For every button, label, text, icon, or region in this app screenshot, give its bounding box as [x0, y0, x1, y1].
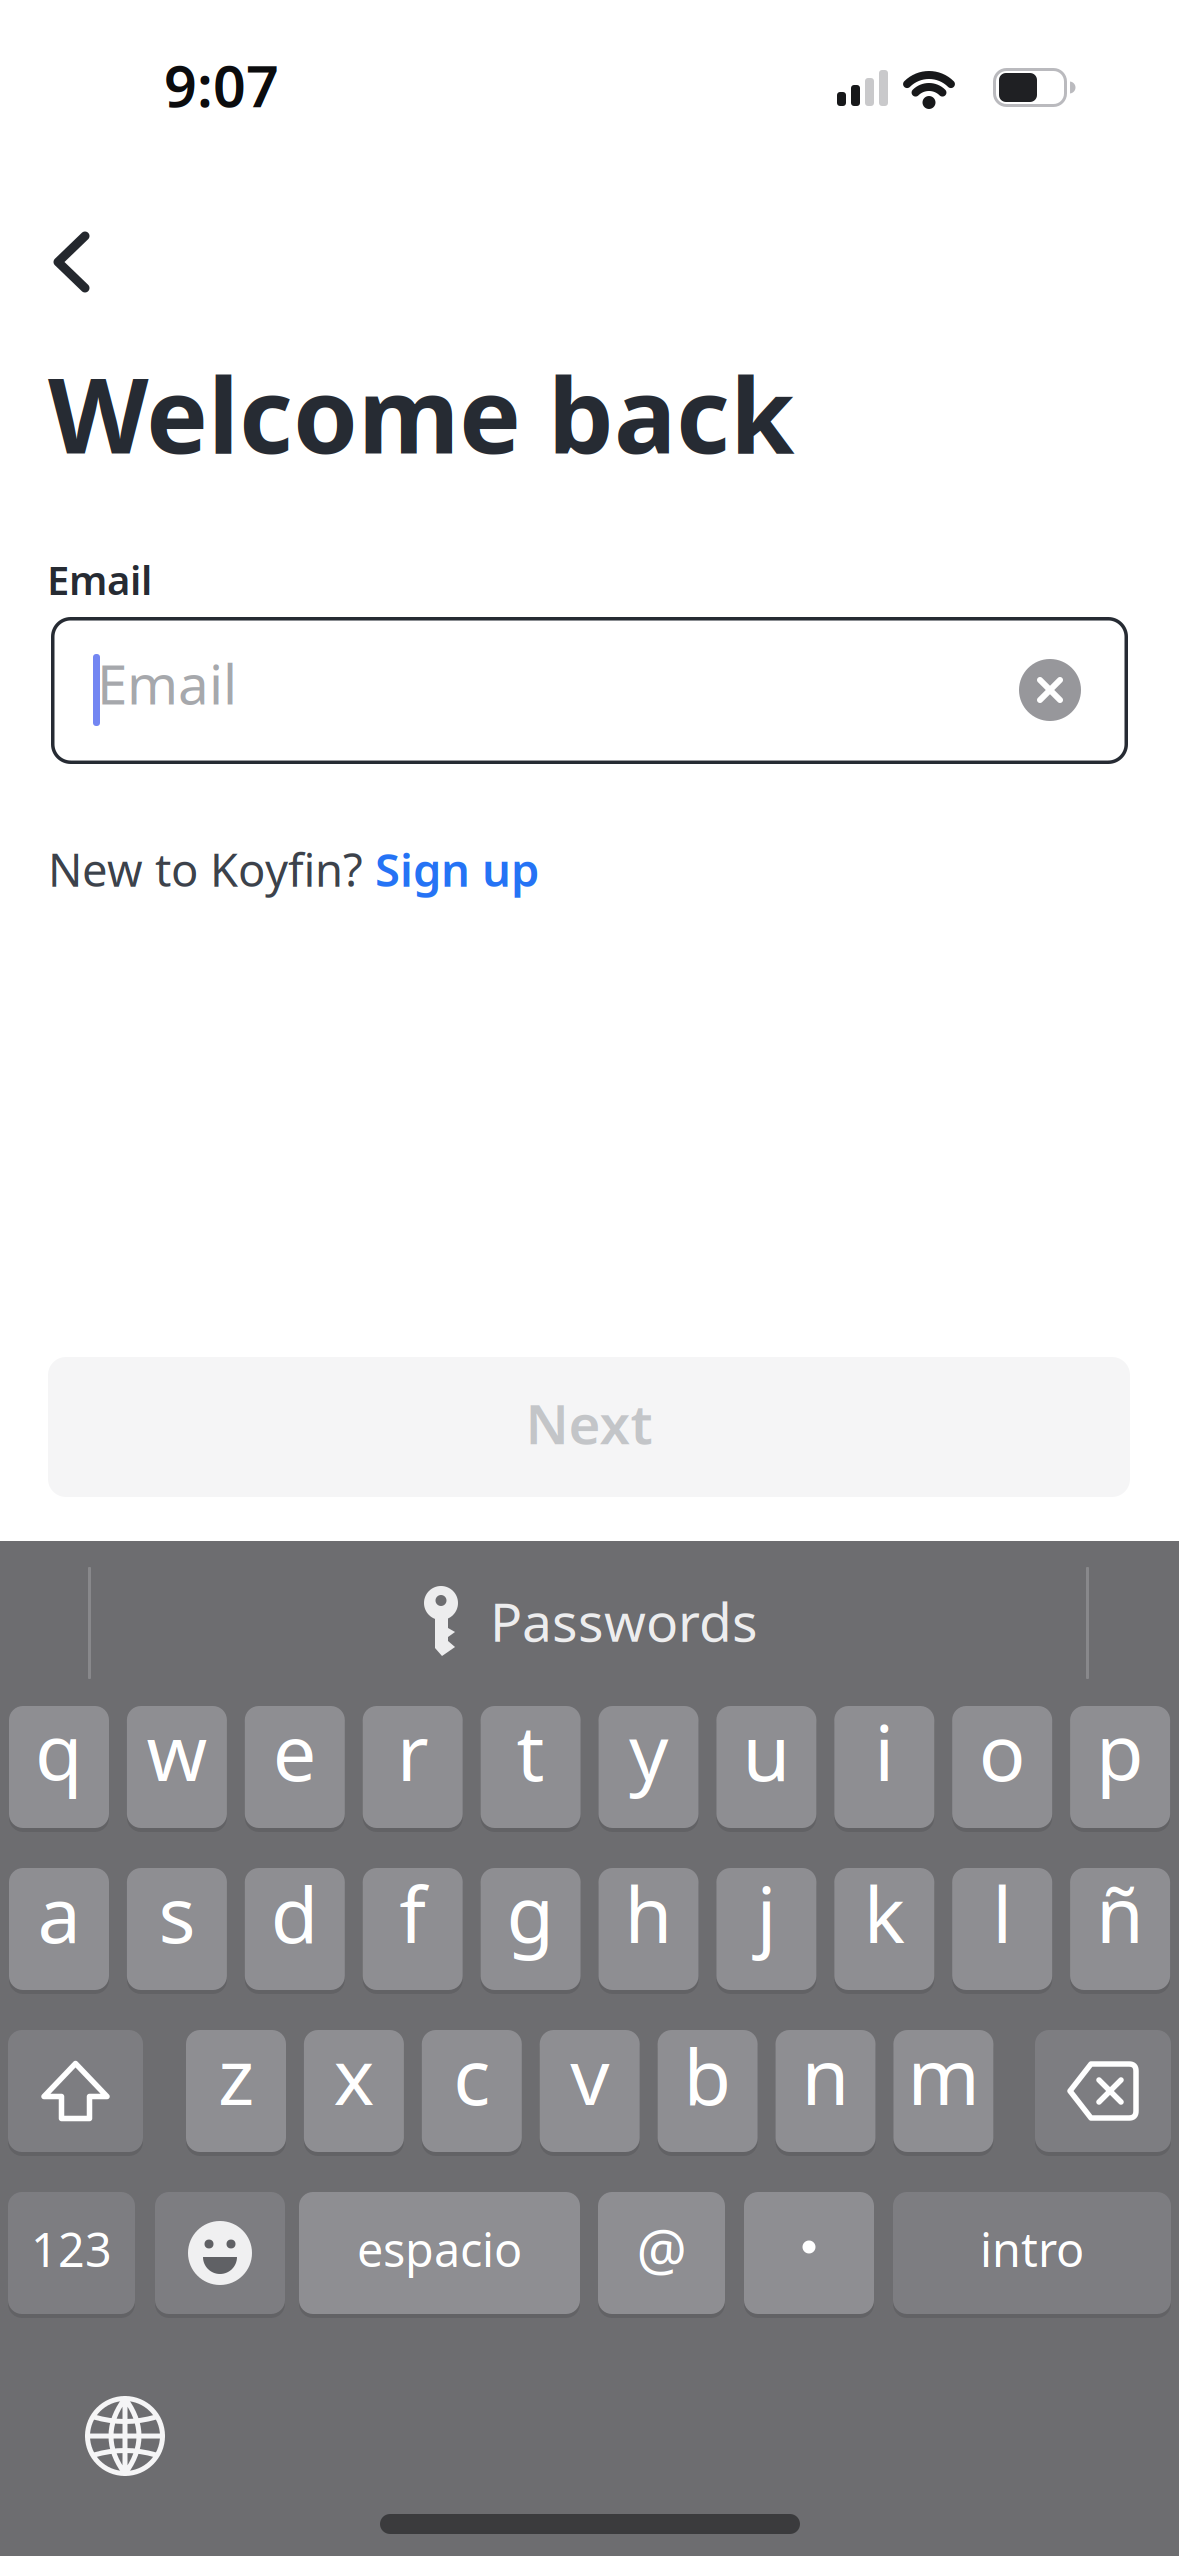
staticText: f	[399, 1862, 426, 1964]
button[interactable]: Sign up	[375, 839, 539, 899]
button[interactable]: Period	[744, 2192, 874, 2314]
button[interactable]: n	[775, 2030, 875, 2152]
button[interactable]: e	[245, 1706, 345, 1828]
staticText: Email	[47, 553, 152, 606]
button[interactable]: @	[598, 2192, 725, 2314]
staticText: 123	[31, 2218, 112, 2280]
staticText: Sign up	[375, 839, 539, 899]
staticText: Welcome back	[48, 344, 794, 482]
staticText: j	[756, 1862, 776, 1964]
staticText: o	[979, 1700, 1026, 1802]
button[interactable]: Clear text	[1019, 659, 1081, 721]
staticText: r	[397, 1700, 429, 1802]
button[interactable]: p	[1070, 1706, 1170, 1828]
button[interactable]: Emoji	[155, 2192, 285, 2314]
staticText: l	[992, 1862, 1012, 1964]
button[interactable]: ñ	[1070, 1868, 1170, 1990]
staticText: 9:07	[164, 47, 279, 123]
staticText: b	[684, 2024, 732, 2126]
staticText: x	[333, 2024, 374, 2126]
staticText: i	[874, 1700, 894, 1802]
button[interactable]: intro	[893, 2192, 1171, 2314]
staticText: m	[907, 2024, 979, 2126]
button[interactable]: j	[716, 1868, 816, 1990]
staticText: y	[629, 1700, 668, 1802]
button[interactable]: h	[598, 1868, 698, 1990]
staticText: New to Koyfin?	[48, 839, 375, 899]
staticText: Passwords	[490, 1586, 758, 1656]
button[interactable]: t	[481, 1706, 581, 1828]
staticText: s	[158, 1862, 195, 1964]
staticText: u	[742, 1700, 790, 1802]
staticText: e	[273, 1700, 317, 1802]
staticText: @	[636, 2212, 686, 2286]
button[interactable]: b	[658, 2030, 758, 2152]
staticText: w	[146, 1700, 207, 1802]
button[interactable]: z	[186, 2030, 286, 2152]
staticText: h	[624, 1862, 672, 1964]
button[interactable]: Delete	[1035, 2030, 1171, 2152]
button[interactable]: q	[9, 1706, 109, 1828]
button[interactable]: x	[304, 2030, 404, 2152]
button[interactable]: c	[422, 2030, 522, 2152]
button[interactable]: d	[245, 1868, 345, 1990]
button[interactable]: o	[952, 1706, 1052, 1828]
button[interactable]: s	[127, 1868, 227, 1990]
staticText: z	[218, 2024, 254, 2126]
staticText: g	[507, 1862, 555, 1964]
button[interactable]: i	[834, 1706, 934, 1828]
staticText: Next	[525, 1387, 652, 1459]
staticText: v	[570, 2024, 609, 2126]
button[interactable]: v	[540, 2030, 640, 2152]
staticText: espacio	[357, 2218, 522, 2280]
staticText: Email	[97, 647, 237, 720]
button[interactable]: w	[127, 1706, 227, 1828]
button[interactable]: m	[893, 2030, 993, 2152]
staticText: t	[517, 1700, 545, 1802]
button[interactable]: espacio	[299, 2192, 580, 2314]
staticText: c	[453, 2024, 490, 2126]
button[interactable]: Back	[37, 222, 127, 302]
button[interactable]: f	[363, 1868, 463, 1990]
staticText: d	[271, 1862, 319, 1964]
button[interactable]: g	[481, 1868, 581, 1990]
button[interactable]: a	[9, 1868, 109, 1990]
button[interactable]: Next keyboard	[85, 2396, 165, 2476]
staticText: k	[864, 1862, 905, 1964]
staticText: intro	[980, 2218, 1084, 2280]
button[interactable]: Passwords	[340, 1541, 840, 1701]
button[interactable]: u	[716, 1706, 816, 1828]
button[interactable]: y	[598, 1706, 698, 1828]
button[interactable]: r	[363, 1706, 463, 1828]
button[interactable]: k	[834, 1868, 934, 1990]
staticText: p	[1096, 1700, 1144, 1802]
button[interactable]: 123	[8, 2192, 135, 2314]
button[interactable]: Shift	[8, 2030, 143, 2152]
button[interactable]: l	[952, 1868, 1052, 1990]
button[interactable]: Next	[48, 1357, 1130, 1497]
staticText: a	[37, 1862, 80, 1964]
staticText: q	[35, 1700, 83, 1802]
staticText: n	[801, 2024, 849, 2126]
staticText: ñ	[1096, 1862, 1144, 1964]
